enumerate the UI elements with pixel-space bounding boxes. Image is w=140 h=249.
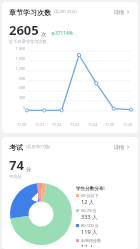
staticText: 未获得分数 bbox=[81, 238, 101, 243]
staticText: 74 bbox=[9, 156, 24, 174]
staticText: 11.23 bbox=[70, 122, 80, 127]
staticText: (共发布17场) bbox=[26, 144, 51, 150]
staticText: 11.26 bbox=[123, 122, 133, 127]
staticText: 119 人 bbox=[81, 228, 98, 236]
staticText: 11.20 bbox=[17, 122, 27, 127]
staticText: 11.22 bbox=[52, 122, 62, 127]
staticText: 37114% bbox=[55, 30, 73, 37]
staticText: 300 bbox=[5, 95, 25, 100]
staticText: 80-100 分 bbox=[81, 223, 99, 228]
staticText: 11.24 bbox=[88, 122, 98, 127]
staticText: 900 bbox=[5, 76, 25, 81]
staticText: 1,200 bbox=[5, 66, 25, 71]
button[interactable]: 详情 bbox=[112, 7, 132, 17]
staticText: 详情 bbox=[114, 9, 124, 15]
staticText: 详情 bbox=[114, 144, 124, 150]
staticText: 12 人 bbox=[81, 243, 95, 247]
staticText: 平均分 bbox=[9, 174, 22, 179]
staticText: 11.21 bbox=[35, 122, 45, 127]
staticText: 60-79 分 bbox=[81, 208, 97, 213]
staticText: 600 bbox=[5, 85, 25, 90]
staticText: 1,500 bbox=[5, 56, 25, 61]
staticText: 12 人 bbox=[81, 198, 95, 206]
staticText: 2605 bbox=[9, 21, 39, 39]
staticText: 11.25 bbox=[105, 122, 115, 127]
staticText: 60 分以下 bbox=[81, 193, 99, 198]
staticText: 学生分数分布: bbox=[76, 185, 105, 191]
staticText: 次 bbox=[41, 31, 47, 38]
staticText: 333 人 bbox=[81, 213, 98, 221]
staticText: 1,800 bbox=[5, 46, 25, 51]
staticText: 考试 bbox=[9, 143, 23, 152]
button[interactable]: 详情 bbox=[112, 142, 132, 152]
staticText: 0 bbox=[5, 105, 25, 110]
staticText: 近七日章节学习次数 bbox=[9, 39, 47, 44]
staticText: 章节学习次数 bbox=[9, 8, 51, 17]
staticText: (共26123次) bbox=[54, 9, 77, 15]
staticText: 分 bbox=[26, 166, 32, 173]
